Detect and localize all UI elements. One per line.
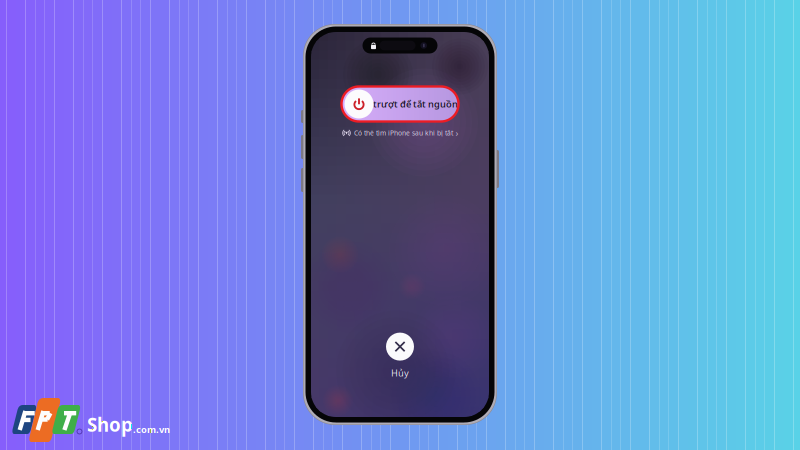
- staticText: ›: [455, 127, 458, 139]
- staticText: Shop: [87, 412, 133, 437]
- staticText: trượt để tắt nguồn: [373, 98, 458, 110]
- staticText: Có thể tìm iPhone sau khi bị tắt: [354, 129, 453, 137]
- button[interactable]: trượt để tắt nguồn: [341, 86, 458, 121]
- staticText: Hủy: [391, 367, 409, 379]
- button[interactable]: Hủy: [386, 333, 414, 379]
- button[interactable]: Có thể tìm iPhone sau khi bị tắt: [341, 127, 458, 138]
- staticText: .com.vn: [133, 423, 170, 436]
